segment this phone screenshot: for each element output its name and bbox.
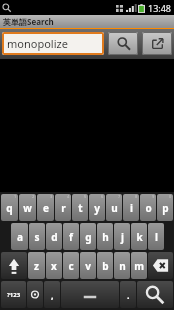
staticText: z [34, 259, 39, 273]
staticText: 7 [118, 194, 121, 199]
staticText: 1 [14, 194, 17, 199]
button[interactable]: m [131, 252, 147, 279]
staticText: 9 [152, 194, 155, 199]
staticText: o [145, 201, 152, 215]
button[interactable]: Space [61, 281, 119, 308]
button[interactable]: Delete [148, 252, 173, 279]
staticText: l [155, 230, 158, 244]
staticText: w [23, 201, 32, 215]
staticText: e [43, 201, 49, 215]
button[interactable]: a [11, 223, 28, 250]
button[interactable]: x [46, 252, 62, 279]
button[interactable]: k [131, 223, 147, 250]
button[interactable]: 8 [123, 194, 139, 221]
staticText: 4 [67, 194, 70, 199]
staticText: r [61, 201, 66, 215]
button[interactable]: d [46, 223, 62, 250]
staticText: m [134, 259, 144, 273]
staticText: t [78, 201, 83, 215]
staticText: 13:48 [148, 2, 172, 14]
button[interactable]: f [63, 223, 79, 250]
staticText: i [130, 201, 133, 215]
button[interactable]: 4 [55, 194, 71, 221]
staticText: y [94, 201, 100, 215]
button[interactable]: monopolize [2, 32, 104, 55]
staticText: f [69, 230, 73, 244]
button[interactable]: 2 [19, 194, 36, 221]
button[interactable]: b [97, 252, 113, 279]
staticText: n [119, 259, 126, 273]
staticText: q [6, 201, 13, 215]
button[interactable]: Settings [27, 281, 43, 308]
button[interactable]: 5 [72, 194, 88, 221]
staticText: v [85, 259, 91, 273]
button[interactable]: . [120, 281, 136, 308]
button[interactable]: c [63, 252, 79, 279]
staticText: 2 [32, 194, 35, 199]
button[interactable]: g [80, 223, 96, 250]
button[interactable]: Search [108, 32, 138, 55]
staticText: ?123 [7, 291, 21, 299]
button[interactable]: z [28, 252, 45, 279]
staticText: , [51, 289, 54, 301]
button[interactable]: 6 [89, 194, 105, 221]
staticText: 6 [101, 194, 104, 199]
button[interactable]: 3 [37, 194, 54, 221]
staticText: u [111, 201, 118, 215]
staticText: 8 [135, 194, 138, 199]
button[interactable]: Open external [142, 32, 172, 55]
staticText: 0 [169, 194, 172, 199]
staticText: g [85, 230, 92, 244]
staticText: 3 [50, 194, 53, 199]
staticText: h [102, 230, 109, 244]
button[interactable]: s [29, 223, 45, 250]
button[interactable]: , [44, 281, 60, 308]
button[interactable]: j [114, 223, 130, 250]
staticText: 英単語Search [3, 16, 54, 27]
staticText: monopolize [7, 36, 68, 51]
staticText: j [121, 230, 124, 244]
button[interactable]: 1 [1, 194, 18, 221]
staticText: 5 [84, 194, 87, 199]
staticText: c [68, 259, 74, 273]
button[interactable]: v [80, 252, 96, 279]
staticText: . [127, 289, 130, 301]
staticText: k [136, 230, 143, 244]
button[interactable]: 0 [157, 194, 173, 221]
button[interactable]: ?123 [1, 281, 26, 308]
staticText: p [162, 201, 169, 215]
staticText: b [102, 259, 109, 273]
button[interactable]: Search [137, 281, 173, 308]
button[interactable]: Shift [1, 252, 27, 279]
button[interactable]: 7 [106, 194, 122, 221]
staticText: x [51, 259, 57, 273]
staticText: s [34, 230, 40, 244]
button[interactable]: n [114, 252, 130, 279]
staticText: d [51, 230, 58, 244]
button[interactable]: l [148, 223, 164, 250]
button[interactable]: h [97, 223, 113, 250]
button[interactable]: 9 [140, 194, 156, 221]
staticText: a [17, 230, 23, 244]
